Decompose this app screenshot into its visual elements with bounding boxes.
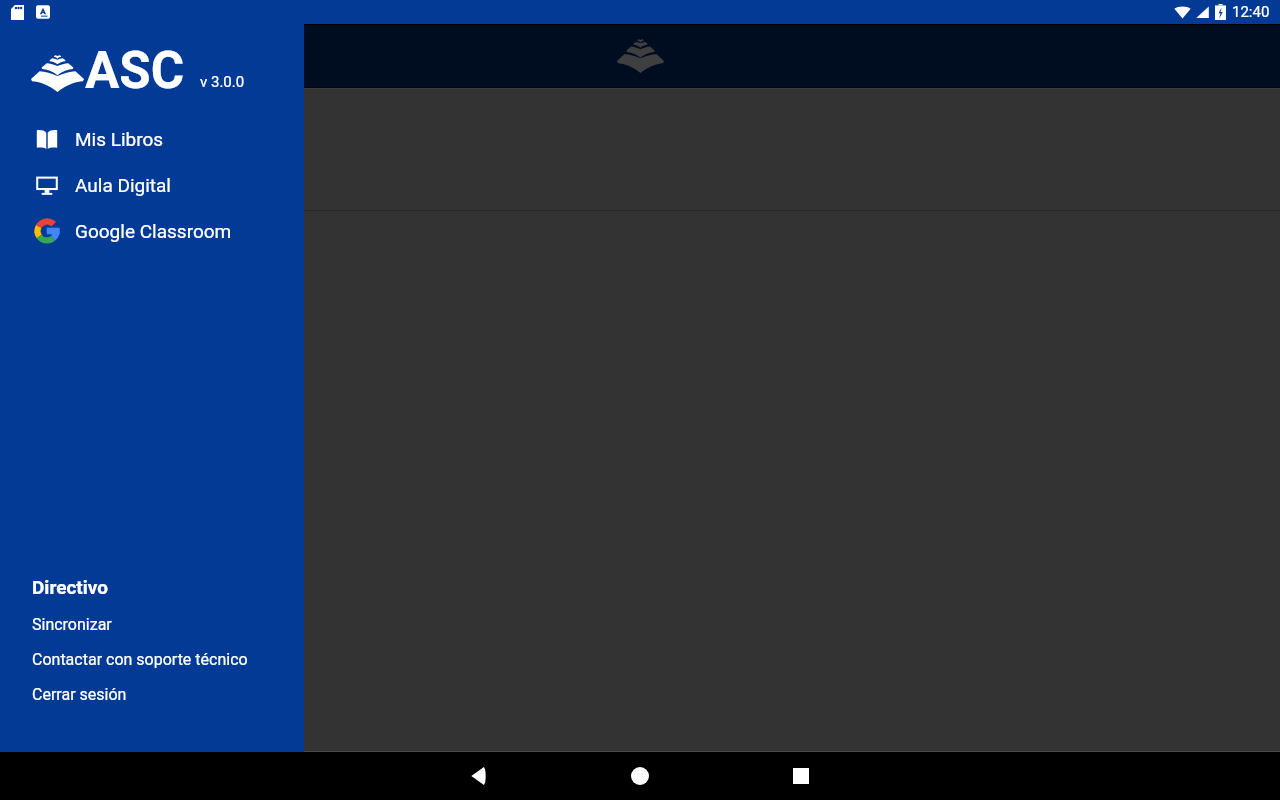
staticText: Cerrar sesión: [32, 685, 127, 704]
staticText: Aula Digital: [75, 174, 171, 196]
staticText: Contactar con soporte técnico: [32, 650, 248, 669]
button[interactable]: ASC home: [600, 25, 680, 87]
button[interactable]: Cerrar sesión: [0, 677, 304, 712]
staticText: Google Classroom: [75, 220, 232, 242]
staticText: Directivo: [32, 576, 109, 598]
button[interactable]: Google Classroom: [0, 208, 304, 254]
button[interactable]: Contactar con soporte técnico: [0, 642, 304, 677]
staticText: v 3.0.0: [200, 73, 245, 91]
staticText: Sincronizar: [32, 615, 112, 634]
staticText: 12:40: [1232, 3, 1270, 21]
button[interactable]: Sincronizar: [0, 607, 304, 642]
button[interactable]: Back: [448, 752, 508, 800]
button[interactable]: Mis Libros: [0, 116, 304, 162]
button[interactable]: Aula Digital: [0, 162, 304, 208]
staticText: ASC: [85, 41, 185, 101]
staticText: Mis Libros: [75, 128, 164, 150]
button[interactable]: Recents: [771, 752, 831, 800]
button[interactable]: Directivo: [0, 567, 304, 607]
button[interactable]: Home: [610, 752, 670, 800]
